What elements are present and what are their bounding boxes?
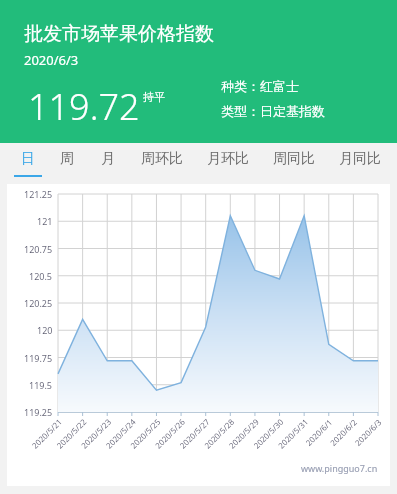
staticText: 月	[101, 150, 115, 168]
staticText: 批发市场苹果价格指数	[24, 22, 214, 46]
button[interactable]: 周同比	[261, 143, 327, 184]
staticText: 月同比	[339, 150, 381, 168]
button[interactable]: 月同比	[327, 143, 393, 184]
button[interactable]: 月	[86, 143, 129, 184]
staticText: 119.72	[28, 82, 140, 131]
staticText: 持平	[143, 90, 165, 104]
staticText: 类型：日定基指数	[221, 103, 325, 119]
button[interactable]: 日	[8, 143, 47, 184]
staticText: 日	[21, 150, 35, 168]
button[interactable]: 周环比	[129, 143, 195, 184]
staticText: 种类：红富士	[221, 78, 299, 94]
staticText: 周同比	[273, 150, 315, 168]
staticText: 周环比	[141, 150, 183, 168]
button[interactable]: 周	[47, 143, 86, 184]
staticText: 周	[60, 150, 74, 168]
button[interactable]: 月环比	[195, 143, 261, 184]
staticText: 2020/6/3	[24, 51, 79, 69]
staticText: 月环比	[207, 150, 249, 168]
